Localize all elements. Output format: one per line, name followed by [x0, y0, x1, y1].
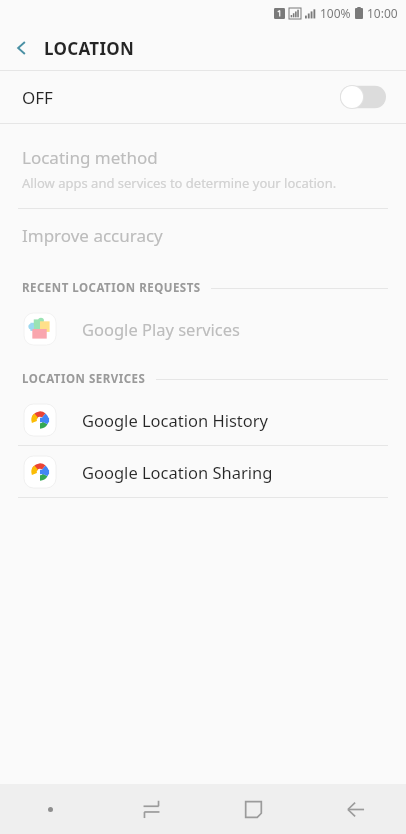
staticText: Google Play services: [82, 318, 240, 340]
button[interactable]: Home: [202, 784, 304, 834]
button[interactable]: Recent apps: [101, 784, 202, 834]
staticText: Allow apps and services to determine you…: [22, 174, 337, 192]
staticText: OFF: [22, 86, 53, 109]
staticText: Locating method: [22, 146, 158, 169]
staticText: 100%: [320, 5, 351, 21]
button[interactable]: Locating method: [0, 134, 406, 208]
button[interactable]: Show keyboard indicator: [0, 784, 101, 834]
button[interactable]: Google Location Sharing: [0, 446, 406, 497]
button[interactable]: Improve accuracy: [0, 209, 406, 261]
staticText: LOCATION: [44, 37, 135, 60]
button[interactable]: Back: [304, 784, 406, 834]
staticText: RECENT LOCATION REQUESTS: [22, 280, 201, 296]
other: Location switch, off: [340, 85, 386, 109]
button[interactable]: Back: [0, 26, 44, 70]
button[interactable]: Google Location History: [0, 394, 406, 445]
staticText: Google Location Sharing: [82, 461, 273, 483]
staticText: Google Location History: [82, 409, 269, 431]
staticText: Improve accuracy: [22, 224, 163, 247]
button[interactable]: Google Play services: [0, 303, 406, 354]
button[interactable]: OFF: [0, 71, 406, 123]
staticText: LOCATION SERVICES: [22, 371, 146, 387]
staticText: 10:00: [367, 5, 398, 21]
